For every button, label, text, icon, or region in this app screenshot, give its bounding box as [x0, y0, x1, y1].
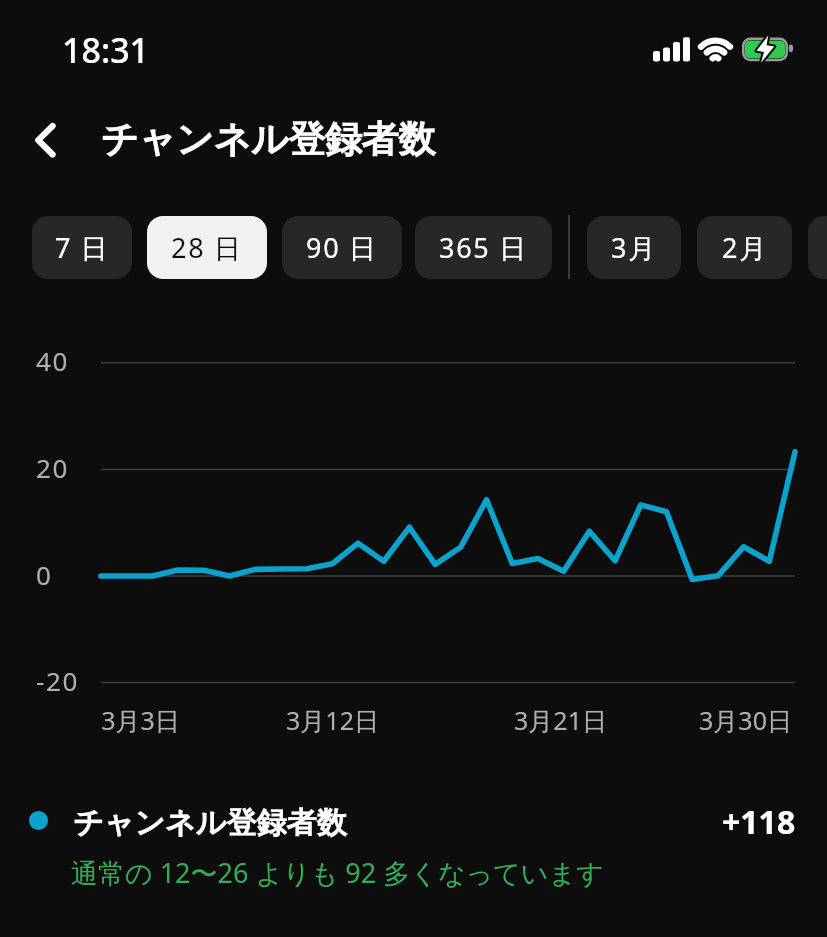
button[interactable]: 1月: [808, 216, 827, 279]
staticText: 90 日: [306, 229, 378, 266]
button[interactable]: 365 日: [415, 216, 552, 279]
staticText: 0: [36, 557, 53, 592]
staticText: 18:31: [62, 27, 150, 73]
button[interactable]: 2月: [697, 216, 792, 279]
staticText: チャンネル登録者数: [101, 116, 435, 163]
staticText: 3月30日: [699, 703, 792, 737]
button[interactable]: Back: [10, 110, 70, 170]
button[interactable]: 90 日: [282, 216, 402, 279]
button[interactable]: 3月: [587, 216, 681, 279]
staticText: 7 日: [55, 229, 110, 266]
staticText: 365 日: [439, 229, 528, 266]
button[interactable]: チャンネル登録者数: [0, 785, 827, 905]
staticText: -20: [36, 663, 79, 698]
button[interactable]: 7 日: [32, 216, 132, 279]
staticText: チャンネル登録者数: [73, 804, 347, 842]
staticText: 40: [36, 343, 69, 378]
staticText: 3月12日: [286, 703, 379, 737]
staticText: 3月: [611, 229, 657, 266]
staticText: 28 日: [171, 229, 243, 266]
staticText: 3月21日: [514, 703, 607, 737]
staticText: 20: [36, 450, 69, 485]
staticText: 3月3日: [101, 703, 180, 737]
staticText: +118: [722, 800, 796, 844]
button[interactable]: 28 日: [147, 216, 267, 279]
staticText: 2月: [722, 229, 768, 266]
staticText: 通常の 12〜26 よりも 92 多くなっています: [71, 854, 604, 891]
